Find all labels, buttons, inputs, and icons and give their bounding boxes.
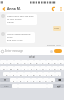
button[interactable]: p (58, 66, 64, 70)
button[interactable]: f (24, 72, 31, 76)
button[interactable]: q (0, 66, 7, 70)
staticText: f (27, 73, 28, 76)
staticText: g (33, 73, 35, 76)
staticText: what (29, 55, 36, 59)
staticText: 3 (17, 61, 19, 64)
button[interactable]: m (49, 78, 55, 82)
staticText: o (54, 67, 56, 70)
button[interactable]: w (7, 66, 14, 70)
button[interactable]: 9 (52, 60, 58, 64)
button[interactable]: u (40, 66, 46, 70)
button[interactable]: 5 (28, 60, 34, 64)
button[interactable]: Send (54, 49, 62, 53)
staticText: e (17, 67, 19, 70)
staticText: Turbo Prepaid Balance: 20.46 EUR until 1… (7, 33, 34, 42)
staticText: y (36, 67, 38, 70)
staticText: c (27, 79, 29, 82)
staticText: ?123 (4, 85, 9, 88)
staticText: w (10, 67, 12, 70)
button[interactable]: Okay (53, 26, 61, 31)
button[interactable]: c (24, 78, 31, 82)
staticText: r (24, 67, 25, 70)
button[interactable]: y (34, 66, 40, 70)
button[interactable]: Enter (53, 84, 64, 88)
staticText: u (42, 67, 44, 70)
button[interactable]: k (49, 72, 55, 76)
button[interactable]: Backspace (55, 78, 64, 82)
button[interactable]: z (10, 78, 17, 82)
button[interactable]: 4 (21, 60, 28, 64)
button[interactable]: Shift (0, 78, 10, 82)
button[interactable]: Enter message (5, 47, 49, 55)
button[interactable]: 2 (7, 60, 14, 64)
button[interactable]: l (55, 72, 61, 76)
staticText: 7 (42, 61, 44, 64)
staticText: h (39, 73, 41, 76)
staticText: delivered 12:05 (47, 44, 61, 47)
button[interactable]: Call (50, 5, 57, 12)
button[interactable]: Period (47, 84, 53, 88)
button[interactable]: x (17, 78, 24, 82)
staticText: 9 (54, 61, 56, 64)
button[interactable]: Comma (12, 84, 18, 88)
staticText: Enter message (5, 49, 24, 53)
staticText: d (20, 73, 22, 76)
button[interactable]: 0 (58, 60, 64, 64)
button[interactable]: t (28, 66, 34, 70)
staticText: 2 (10, 61, 12, 64)
staticText: s (13, 73, 15, 76)
button[interactable]: j (43, 72, 49, 76)
staticText: v (33, 79, 35, 82)
staticText: 1 (3, 61, 5, 64)
staticText: 5 (30, 61, 32, 64)
button[interactable]: 8 (46, 60, 52, 64)
button[interactable]: d (17, 72, 24, 76)
staticText: 6 (36, 61, 38, 64)
button[interactable]: a (3, 72, 10, 76)
button[interactable]: i (46, 66, 52, 70)
staticText: i (49, 67, 50, 70)
staticText: Anna M. (7, 6, 21, 11)
staticText: 8 (48, 61, 50, 64)
button[interactable]: g (31, 72, 37, 76)
button[interactable]: 6 (34, 60, 40, 64)
button[interactable]: h (37, 72, 43, 76)
staticText: a (6, 73, 8, 76)
button[interactable]: Back (0, 5, 7, 12)
button[interactable]: o (52, 66, 58, 70)
staticText: b (39, 79, 41, 82)
staticText: z (13, 79, 15, 82)
staticText: Please reply with the date of your arriv… (7, 15, 36, 24)
staticText: q (3, 67, 5, 70)
button[interactable]: r (21, 66, 28, 70)
staticText: 0 (60, 61, 62, 64)
staticText: t (31, 67, 32, 70)
button[interactable]: Symbols (0, 84, 12, 88)
button[interactable]: b (37, 78, 43, 82)
button[interactable]: 3 (14, 60, 21, 64)
button[interactable]: 7 (40, 60, 46, 64)
button[interactable]: Turbo Prepaid Balance: 20.46 EUR until 1… (6, 32, 35, 43)
button[interactable]: s (10, 72, 17, 76)
staticText: m (51, 79, 54, 82)
staticText: l (58, 73, 59, 76)
staticText: Okay (54, 27, 60, 30)
button[interactable]: 1 (0, 60, 7, 64)
staticText: k (51, 73, 53, 76)
staticText: n (45, 79, 47, 82)
button[interactable]: v (31, 78, 37, 82)
staticText: 4 (24, 61, 26, 64)
staticText: j (46, 73, 47, 76)
staticText: p (60, 67, 62, 70)
button[interactable]: Emoji (49, 49, 54, 54)
button[interactable]: n (43, 78, 49, 82)
button[interactable]: Please reply with the date of your arriv… (6, 14, 37, 25)
button[interactable]: More options (57, 5, 64, 12)
staticText: x (20, 79, 22, 82)
button[interactable]: Attach (0, 49, 5, 54)
staticText: . (50, 85, 51, 88)
button[interactable]: e (14, 66, 21, 70)
